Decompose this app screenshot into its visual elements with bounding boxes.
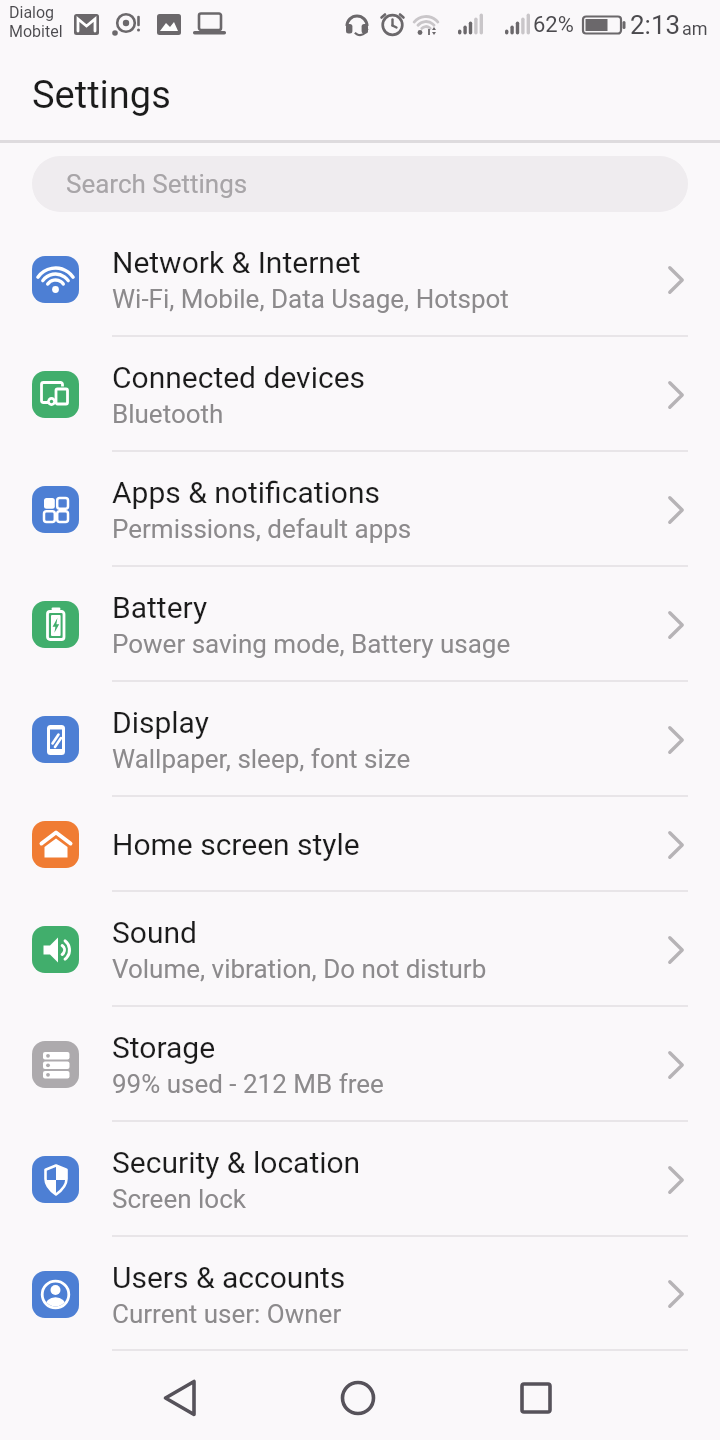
staticText: 2:13 <box>630 10 681 40</box>
staticText: Wallpaper, sleep, font size <box>112 744 411 774</box>
staticText: Bluetooth <box>112 399 224 429</box>
staticText: Battery <box>112 590 208 625</box>
button[interactable]: Sound <box>0 892 720 1007</box>
staticText: Connected devices <box>112 360 366 395</box>
staticText: Apps & notifications <box>112 475 380 510</box>
staticText: Security & location <box>112 1145 361 1180</box>
staticText: Users & accounts <box>112 1260 346 1295</box>
button[interactable]: Users & accounts <box>0 1237 720 1351</box>
staticText: Permissions, default apps <box>112 514 412 544</box>
staticText: Screen lock <box>112 1184 246 1214</box>
button[interactable]: Search Settings <box>32 156 688 212</box>
button[interactable]: Connected devices <box>0 337 720 452</box>
button[interactable]: Network & Internet <box>0 222 720 337</box>
button[interactable]: Apps & notifications <box>0 452 720 567</box>
button[interactable] <box>150 1373 210 1433</box>
button[interactable]: Security & location <box>0 1122 720 1237</box>
button[interactable] <box>328 1373 388 1433</box>
staticText: Mobitel <box>9 22 63 41</box>
button[interactable]: Storage <box>0 1007 720 1122</box>
staticText: Search Settings <box>66 169 248 199</box>
staticText: Sound <box>112 915 197 950</box>
staticText: Storage <box>112 1030 216 1065</box>
staticText: Dialog <box>9 3 55 22</box>
button[interactable]: Home screen style <box>0 797 720 892</box>
staticText: Network & Internet <box>112 245 361 280</box>
button[interactable] <box>506 1373 566 1433</box>
staticText: 99% used - 212 MB free <box>112 1069 384 1099</box>
staticText: Wi-Fi, Mobile, Data Usage, Hotspot <box>112 284 509 314</box>
staticText: Current user: Owner <box>112 1299 342 1329</box>
staticText: Display <box>112 705 209 740</box>
staticText: 62% <box>533 12 574 38</box>
staticText: am <box>682 18 708 39</box>
staticText: Settings <box>32 73 171 118</box>
button[interactable]: Display <box>0 682 720 797</box>
button[interactable]: Battery <box>0 567 720 682</box>
staticText: Home screen style <box>112 827 360 862</box>
staticText: Power saving mode, Battery usage <box>112 629 511 659</box>
staticText: Volume, vibration, Do not disturb <box>112 954 487 984</box>
